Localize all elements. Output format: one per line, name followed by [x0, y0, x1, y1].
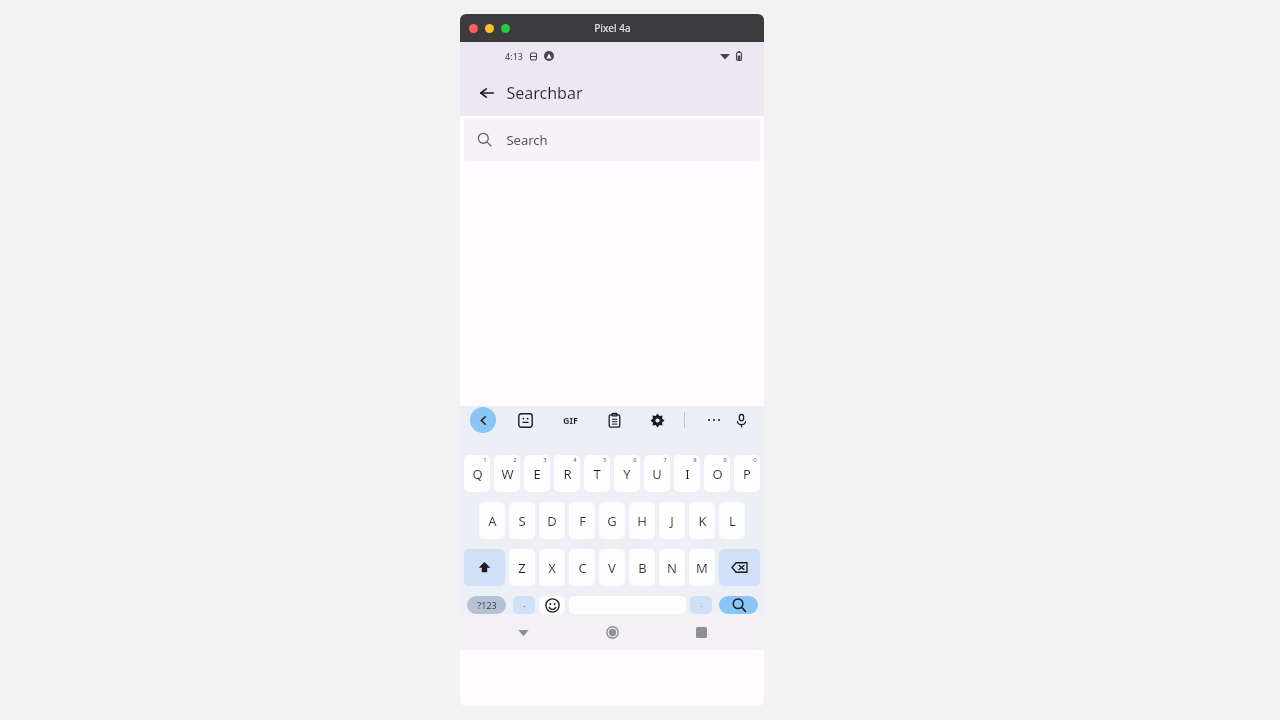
button[interactable]: W: [494, 455, 520, 492]
button[interactable]: Search: [464, 118, 760, 161]
button[interactable]: U: [644, 455, 670, 492]
staticText: C: [578, 559, 587, 577]
button[interactable]: D: [539, 502, 565, 539]
button[interactable]: T: [584, 455, 610, 492]
staticText: 7: [663, 456, 667, 464]
staticText: D: [547, 512, 557, 530]
button[interactable]: Recents: [686, 617, 716, 647]
staticText: ,: [523, 596, 526, 607]
staticText: Pixel 4a: [594, 21, 631, 35]
staticText: 9: [723, 456, 727, 464]
staticText: E: [533, 465, 541, 483]
button[interactable]: J: [659, 502, 685, 539]
button[interactable]: P: [734, 455, 760, 492]
staticText: R: [563, 465, 572, 483]
staticText: L: [729, 512, 736, 530]
button[interactable]: Back: [472, 78, 502, 108]
button[interactable]: M: [689, 549, 715, 586]
button[interactable]: S: [509, 502, 535, 539]
button[interactable]: ,: [513, 596, 535, 614]
button[interactable]: H: [629, 502, 655, 539]
staticText: 3: [543, 456, 547, 464]
button[interactable]: V: [599, 549, 625, 586]
staticText: G: [607, 512, 617, 530]
staticText: O: [712, 465, 723, 483]
button[interactable]: ?123: [467, 596, 506, 614]
button[interactable]: B: [629, 549, 655, 586]
staticText: .: [700, 596, 703, 607]
staticText: V: [608, 559, 616, 577]
button[interactable]: Settings: [644, 407, 670, 433]
button[interactable]: Emoji: [539, 596, 565, 614]
button[interactable]: GIF: [556, 406, 584, 434]
button[interactable]: .: [690, 596, 712, 614]
button[interactable]: Backspace: [719, 549, 760, 586]
staticText: 5: [603, 456, 607, 464]
staticText: Searchbar: [506, 82, 583, 104]
staticText: 2: [513, 456, 517, 464]
button[interactable]: Search: [719, 596, 758, 614]
button[interactable]: Q: [464, 455, 490, 492]
staticText: J: [670, 512, 674, 530]
button[interactable]: L: [719, 502, 745, 539]
button[interactable]: I: [674, 455, 700, 492]
staticText: GIF: [563, 414, 578, 426]
button[interactable]: R: [554, 455, 580, 492]
staticText: 4:13: [505, 50, 523, 62]
staticText: A: [488, 512, 497, 530]
staticText: H: [637, 512, 647, 530]
button[interactable]: G: [599, 502, 625, 539]
staticText: P: [743, 465, 751, 483]
staticText: T: [593, 465, 601, 483]
staticText: K: [698, 512, 707, 530]
staticText: S: [518, 512, 526, 530]
button[interactable]: O: [704, 455, 730, 492]
staticText: F: [579, 512, 586, 530]
button[interactable]: Home: [597, 617, 627, 647]
staticText: Z: [518, 559, 526, 577]
staticText: Search: [506, 131, 548, 149]
button[interactable]: Shift: [464, 549, 505, 586]
button[interactable]: A: [479, 502, 505, 539]
button[interactable]: Back: [508, 617, 538, 647]
button[interactable]: Stickers: [512, 407, 538, 433]
staticText: 0: [753, 456, 757, 464]
staticText: B: [638, 559, 647, 577]
staticText: 6: [633, 456, 637, 464]
staticText: M: [696, 559, 708, 577]
staticText: W: [501, 465, 514, 483]
button[interactable]: Clipboard: [601, 407, 627, 433]
staticText: 1: [483, 456, 487, 464]
button[interactable]: C: [569, 549, 595, 586]
button[interactable]: K: [689, 502, 715, 539]
staticText: N: [667, 559, 677, 577]
staticText: X: [548, 559, 556, 577]
staticText: 4: [573, 456, 577, 464]
button[interactable]: Expand: [470, 407, 496, 433]
staticText: 8: [693, 456, 697, 464]
button[interactable]: Voice input: [728, 407, 754, 433]
staticText: Y: [623, 465, 631, 483]
button[interactable]: X: [539, 549, 565, 586]
button[interactable]: F: [569, 502, 595, 539]
button[interactable]: Z: [509, 549, 535, 586]
button[interactable]: More options: [701, 407, 727, 433]
button[interactable]: N: [659, 549, 685, 586]
staticText: U: [652, 465, 662, 483]
staticText: Q: [472, 465, 483, 483]
staticText: I: [685, 465, 690, 483]
button[interactable]: Y: [614, 455, 640, 492]
button[interactable]: E: [524, 455, 550, 492]
staticText: ?123: [477, 599, 497, 611]
